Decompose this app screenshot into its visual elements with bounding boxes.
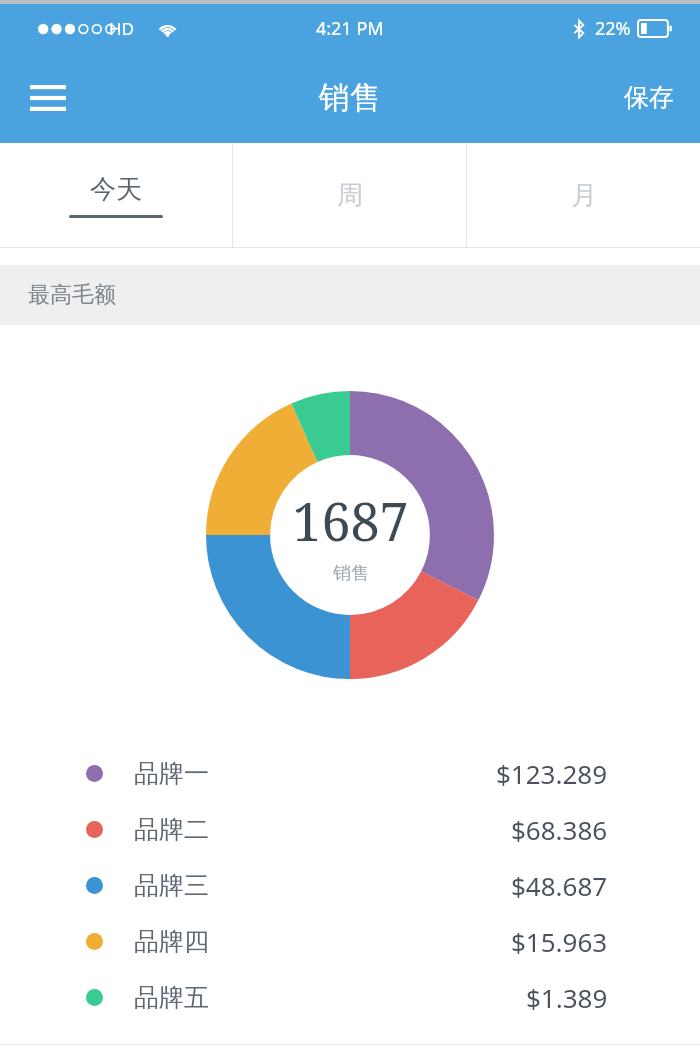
staticText: HD <box>109 17 135 40</box>
button[interactable]: 品牌一 <box>0 745 700 801</box>
staticText: 品牌四 <box>134 926 209 957</box>
staticText: $15.963 <box>511 924 608 959</box>
button[interactable]: 周 <box>233 143 466 247</box>
staticText: 最高毛额 <box>28 281 116 309</box>
staticText: 月 <box>571 179 597 212</box>
staticText: 品牌一 <box>134 758 209 789</box>
staticText: $1.389 <box>526 980 608 1015</box>
staticText: $123.289 <box>496 756 608 791</box>
staticText: 品牌三 <box>134 870 209 901</box>
staticText: 销售 <box>319 78 381 117</box>
staticText: $48.687 <box>511 868 608 903</box>
staticText: 品牌二 <box>134 814 209 845</box>
button[interactable]: Menu <box>18 68 78 128</box>
staticText: 周 <box>337 179 363 212</box>
staticText: 保存 <box>624 82 674 113</box>
button[interactable]: 月 <box>467 143 700 247</box>
staticText: 销售 <box>333 562 369 585</box>
staticText: 22% <box>595 16 631 41</box>
button[interactable]: 今天 <box>0 143 232 247</box>
button[interactable]: 品牌三 <box>0 857 700 913</box>
staticText: 1687 <box>292 485 409 556</box>
staticText: 今天 <box>90 173 142 206</box>
staticText: 品牌五 <box>134 982 209 1013</box>
button[interactable]: 保存 <box>610 70 688 125</box>
staticText: $68.386 <box>511 812 608 847</box>
button[interactable]: 品牌五 <box>0 969 700 1025</box>
button[interactable]: 品牌四 <box>0 913 700 969</box>
button[interactable]: 品牌二 <box>0 801 700 857</box>
staticText: 4:21 PM <box>316 16 384 41</box>
